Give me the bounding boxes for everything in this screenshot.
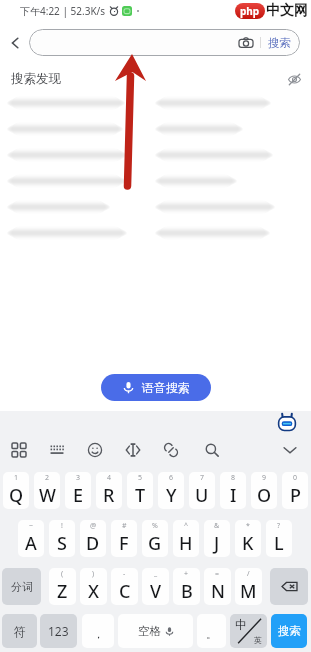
button[interactable]: Keyboard layouts (8, 439, 30, 461)
button[interactable]: 2 (34, 472, 60, 509)
staticText: R (103, 483, 115, 508)
button[interactable]: Assistant (276, 412, 298, 434)
staticText: 分词 (11, 580, 33, 594)
staticText: 下午4:22 | 52.3K/s (20, 4, 106, 18)
button[interactable]: Keyboard (46, 439, 68, 461)
staticText: D (86, 531, 100, 556)
button[interactable]: & (204, 520, 230, 557)
button[interactable]: 5 (127, 472, 153, 509)
staticText: - (123, 569, 126, 579)
staticText: / (247, 569, 250, 579)
button[interactable]: 9 (251, 472, 277, 509)
staticText: 123 (48, 623, 69, 639)
staticText: % (152, 521, 158, 531)
button[interactable]: ( (49, 568, 76, 605)
button[interactable]: Attach (160, 439, 182, 461)
button[interactable]: 。 (197, 614, 226, 648)
button[interactable]: 搜索 (271, 614, 307, 648)
staticText: Q (9, 483, 24, 508)
staticText: B (181, 579, 193, 604)
button[interactable]: Hide suggestions (284, 69, 304, 89)
staticText: 2 (45, 473, 50, 483)
button[interactable]: 符 (2, 614, 37, 648)
button[interactable]: Search (201, 439, 223, 461)
button[interactable]: = (204, 568, 231, 605)
button[interactable]: 分词 (2, 568, 41, 605)
staticText: 搜索 (268, 36, 291, 50)
staticText: C (119, 579, 131, 604)
button[interactable]: Chinese English toggle (230, 614, 267, 648)
staticText: ~ (29, 521, 34, 531)
staticText: M (240, 579, 257, 604)
button[interactable]: 语音搜索 (101, 374, 211, 401)
staticText: L (274, 531, 284, 556)
button[interactable]: 6 (158, 472, 184, 509)
staticText: 6 (169, 473, 174, 483)
staticText: 。 (206, 627, 217, 641)
staticText: ^ (184, 521, 189, 531)
staticText: ! (61, 521, 63, 531)
button[interactable]: ! (49, 520, 75, 557)
button[interactable]: Move cursor (122, 439, 144, 461)
staticText: S (57, 531, 67, 556)
button[interactable]: - (111, 568, 138, 605)
staticText: ( (61, 569, 64, 579)
button[interactable]: 0 (282, 472, 308, 509)
staticText: ? (277, 521, 281, 531)
staticText: ) (92, 569, 95, 579)
button[interactable]: @ (80, 520, 106, 557)
staticText: 4 (107, 473, 112, 483)
button[interactable]: Backspace (270, 568, 308, 605)
staticText: X (88, 579, 99, 604)
button[interactable]: / (235, 568, 262, 605)
staticText: F (119, 531, 129, 556)
staticText: H (179, 531, 193, 556)
staticText: W (39, 483, 56, 508)
button[interactable]: 123 (40, 614, 77, 648)
staticText: 1 (14, 473, 19, 483)
staticText: 8 (231, 473, 236, 483)
staticText: I (230, 483, 237, 508)
staticText: ， (93, 627, 104, 641)
button[interactable]: Back (0, 29, 29, 56)
button[interactable]: ， (82, 614, 114, 648)
button[interactable]: 1 (3, 472, 29, 509)
button[interactable]: % (142, 520, 168, 557)
button[interactable]: # (111, 520, 137, 557)
button[interactable]: 3 (65, 472, 91, 509)
button[interactable]: Collapse keyboard (279, 439, 301, 461)
button[interactable]: _ (142, 568, 169, 605)
button[interactable]: 7 (189, 472, 215, 509)
button[interactable]: + (173, 568, 200, 605)
staticText: T (135, 483, 146, 508)
staticText: 9 (262, 473, 267, 483)
staticText: 中文网 (266, 2, 308, 20)
staticText: E (73, 483, 84, 508)
staticText: 0 (293, 473, 298, 483)
staticText: * (246, 521, 250, 531)
staticText: U (195, 483, 209, 508)
button[interactable]: ^ (173, 520, 199, 557)
button[interactable]: * (235, 520, 261, 557)
staticText: + (184, 569, 189, 579)
staticText: A (25, 531, 37, 556)
staticText: _ (154, 569, 158, 579)
button[interactable]: 4 (96, 472, 122, 509)
button[interactable]: 空格 (118, 614, 193, 648)
staticText: 7 (200, 473, 205, 483)
button[interactable]: ) (80, 568, 107, 605)
button[interactable]: 搜索 (29, 29, 300, 56)
button[interactable]: 8 (220, 472, 246, 509)
staticText: 中 (235, 617, 247, 632)
button[interactable]: Emoji (84, 439, 106, 461)
staticText: V (150, 579, 162, 604)
staticText: # (122, 521, 127, 531)
button[interactable]: ? (266, 520, 292, 557)
staticText: 搜索发现 (11, 71, 61, 87)
staticText: 空格 (138, 624, 161, 638)
staticText: 英 (254, 635, 262, 645)
button[interactable]: ~ (18, 520, 44, 557)
staticText: 语音搜索 (142, 380, 190, 395)
staticText: Z (57, 579, 68, 604)
staticText: P (290, 483, 301, 508)
